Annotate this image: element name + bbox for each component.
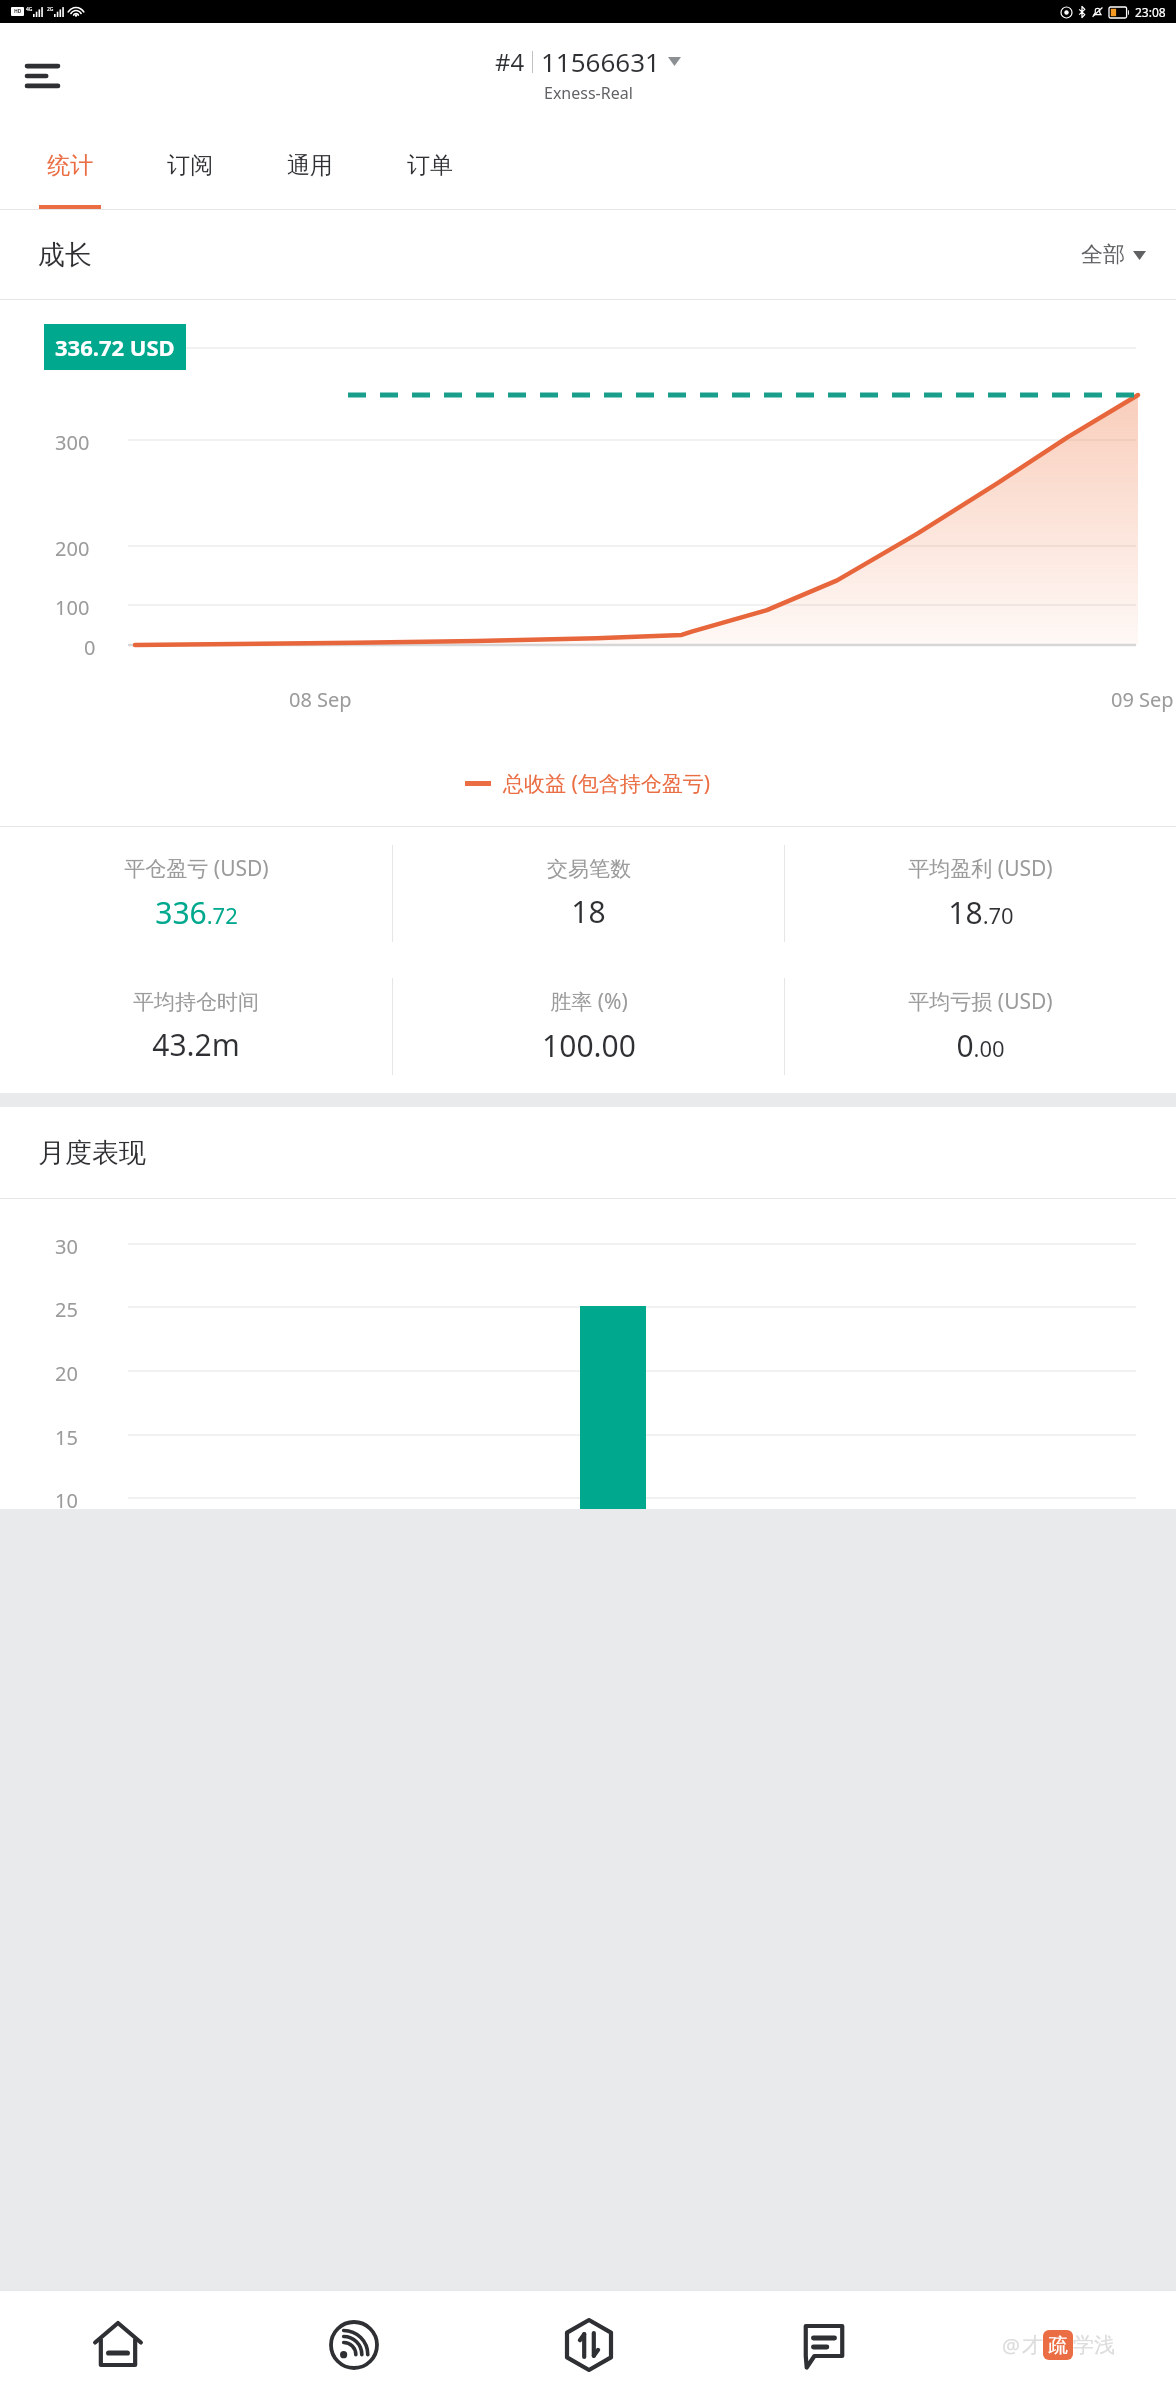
staticText: 平均持仓时间 [133, 989, 259, 1015]
staticText: 10 [55, 1487, 78, 1514]
button[interactable]: 订单 [370, 129, 490, 210]
staticText: 25 [55, 1296, 78, 1323]
staticText: 08 Sep [289, 686, 352, 713]
staticText: 月度表现 [38, 1136, 146, 1170]
button[interactable]: 胜率 (%) [393, 960, 784, 1093]
staticText: 全部 [1081, 241, 1125, 269]
staticText: 18.70 [948, 892, 1014, 933]
staticText: 平仓盈亏 (USD) [124, 854, 269, 883]
staticText: 300 [55, 429, 90, 456]
staticText: 2G [47, 6, 54, 13]
staticText: 0 [84, 634, 96, 661]
staticText: 11566631 [541, 44, 660, 79]
staticText: HD [14, 8, 22, 15]
button[interactable]: 平均持仓时间 [0, 960, 392, 1093]
button[interactable]: 全部 [1081, 241, 1146, 269]
staticText: 400 [55, 336, 90, 363]
staticText: 胜率 (%) [550, 987, 628, 1016]
button[interactable]: 交易笔数 [393, 827, 784, 960]
staticText: 0.00 [956, 1025, 1005, 1066]
button[interactable]: Signals [236, 2290, 471, 2400]
staticText: 30 [55, 1233, 78, 1260]
staticText: 09 Sep [1111, 686, 1174, 713]
staticText: @ [1002, 2332, 1020, 2359]
staticText: 总收益 (包含持仓盈亏) [503, 769, 711, 798]
staticText: 336.72 [155, 892, 238, 933]
staticText: 4G [26, 6, 33, 13]
button[interactable]: Messages [706, 2290, 941, 2400]
staticText: #4 [495, 45, 525, 78]
button[interactable]: 平均亏损 (USD) [785, 960, 1176, 1093]
staticText: 43.2m [152, 1024, 240, 1065]
staticText: 成长 [38, 238, 92, 272]
button[interactable]: Home [0, 2290, 236, 2400]
button[interactable]: 平仓盈亏 (USD) [0, 827, 392, 960]
button[interactable]: 通用 [250, 129, 370, 210]
staticText: 336.72 USD [55, 332, 175, 362]
button[interactable]: Trade [471, 2290, 706, 2400]
staticText: Exness-Real [544, 82, 633, 104]
staticText: 100.00 [542, 1025, 636, 1066]
staticText: 200 [55, 535, 90, 562]
button[interactable]: 平均盈利 (USD) [785, 827, 1176, 960]
button[interactable]: 统计 [10, 129, 130, 210]
staticText: 23:08 [1135, 4, 1166, 20]
staticText: 统计 [47, 151, 93, 180]
staticText: 平均盈利 (USD) [908, 854, 1053, 883]
staticText: 才 [1022, 2332, 1043, 2358]
staticText: 交易笔数 [547, 856, 631, 882]
button[interactable]: 订阅 [130, 129, 250, 210]
staticText: 100 [55, 594, 90, 621]
staticText: 15 [55, 1424, 78, 1451]
button[interactable]: Menu [16, 50, 68, 102]
staticText: 疏 [1048, 2333, 1068, 2358]
staticText: 通用 [287, 151, 333, 180]
staticText: 平均亏损 (USD) [908, 987, 1053, 1016]
staticText: 20 [55, 1360, 78, 1387]
staticText: 18 [571, 891, 606, 932]
staticText: 订阅 [167, 151, 213, 180]
staticText: 订单 [407, 151, 453, 180]
staticText: 学浅 [1073, 2332, 1115, 2358]
